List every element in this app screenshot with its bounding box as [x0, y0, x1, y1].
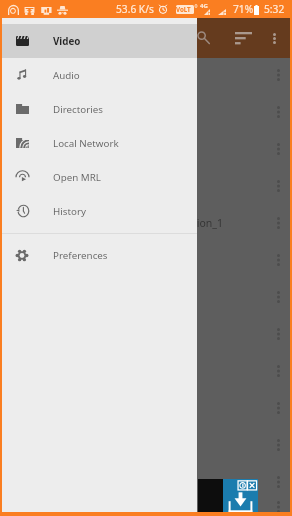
button[interactable]: Local Network [0, 126, 197, 160]
button[interactable]: Open MRL [0, 160, 197, 194]
button[interactable]: Directories [0, 92, 197, 126]
button[interactable]: More [0, 278, 292, 315]
button[interactable]: More [0, 426, 292, 463]
staticText: VoLTE [176, 5, 194, 14]
button[interactable]: More [0, 500, 292, 514]
button[interactable]: More [0, 93, 292, 130]
button[interactable]: More [267, 56, 289, 93]
staticText: History [53, 205, 86, 218]
button[interactable]: History [0, 194, 197, 228]
button[interactable]: Session_1 [0, 204, 292, 241]
button[interactable]: More [0, 315, 292, 352]
staticText: 71% [233, 2, 254, 16]
staticText: Directories [53, 103, 104, 116]
staticText: 4G [200, 2, 208, 10]
button[interactable]: Download [223, 479, 258, 516]
button[interactable]: Preferences [0, 238, 197, 272]
button[interactable]: More [0, 241, 292, 278]
button[interactable]: Search [190, 24, 218, 52]
button[interactable]: Video [0, 24, 197, 58]
button[interactable]: Audio [0, 58, 197, 92]
button[interactable]: More [0, 130, 292, 167]
button[interactable]: Sort [229, 24, 257, 52]
staticText: Video [53, 35, 81, 48]
button[interactable]: More options [260, 24, 288, 52]
staticText: Preferences [53, 249, 108, 262]
staticText: 53.6 K/s [116, 2, 154, 16]
staticText: Open MRL [53, 171, 101, 184]
button[interactable]: More [267, 500, 289, 514]
staticText: 5:32 [264, 2, 285, 16]
button[interactable]: More [0, 56, 292, 93]
button[interactable]: More [0, 389, 292, 426]
button[interactable]: More [0, 352, 292, 389]
button[interactable]: More [0, 167, 292, 204]
staticText: Session_1 [175, 216, 223, 230]
button[interactable]: More [0, 463, 292, 500]
staticText: Local Network [53, 137, 119, 150]
staticText: Audio [53, 69, 80, 82]
